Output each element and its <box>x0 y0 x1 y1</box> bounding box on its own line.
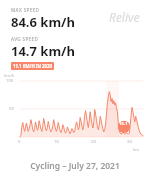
staticText: 84.6 km/h <box>11 13 75 31</box>
button[interactable]: 11.1 KM/H IN 2020 <box>11 62 54 70</box>
staticText: 20 <box>91 139 96 145</box>
staticText: 0 <box>18 139 21 145</box>
other: Relive <box>109 9 140 25</box>
staticText: km/h <box>4 73 15 79</box>
staticText: Cycling – July 27, 2021 <box>0 160 150 172</box>
staticText: 100 <box>6 78 14 84</box>
staticText: AVG SPEED <box>11 36 39 42</box>
staticText: MAX SPEED <box>11 7 40 13</box>
staticText: 10 <box>54 139 59 145</box>
staticText: Relive <box>109 9 140 25</box>
staticText: 14.7 km/h <box>11 42 75 60</box>
staticText: 15.1 <box>119 121 128 127</box>
staticText: km <box>133 147 139 152</box>
staticText: 50 <box>9 106 14 112</box>
staticText: 30 <box>127 139 132 145</box>
staticText: 11.1 KM/H IN 2020 <box>13 63 52 69</box>
